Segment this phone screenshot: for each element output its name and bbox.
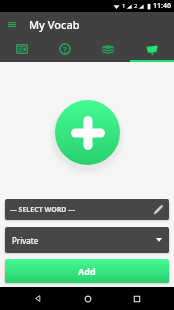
button[interactable]: Quiz: [43, 36, 86, 62]
button[interactable]: Private: [5, 227, 169, 253]
button[interactable]: Add word: [130, 36, 174, 62]
button[interactable]: Back: [26, 287, 49, 310]
staticText: ?: [63, 44, 67, 55]
button[interactable]: Open navigation menu: [0, 12, 24, 36]
button[interactable]: Recent apps: [125, 287, 148, 310]
staticText: Add: [78, 265, 96, 277]
staticText: My Vocab: [29, 17, 80, 32]
button[interactable]: Add new word: [55, 100, 120, 165]
staticText: 2: [134, 2, 138, 10]
button[interactable]: Word list: [0, 36, 43, 62]
staticText: --- SELECT WORD ---: [10, 205, 148, 215]
button[interactable]: Edit word: [148, 199, 169, 220]
button[interactable]: Add: [5, 259, 169, 283]
button[interactable]: Home: [76, 287, 99, 310]
button[interactable]: Decks: [86, 36, 130, 62]
staticText: 1: [122, 2, 126, 10]
staticText: Private: [12, 235, 39, 246]
staticText: 11:46: [153, 1, 171, 11]
button[interactable]: --- SELECT WORD ---: [5, 199, 169, 220]
